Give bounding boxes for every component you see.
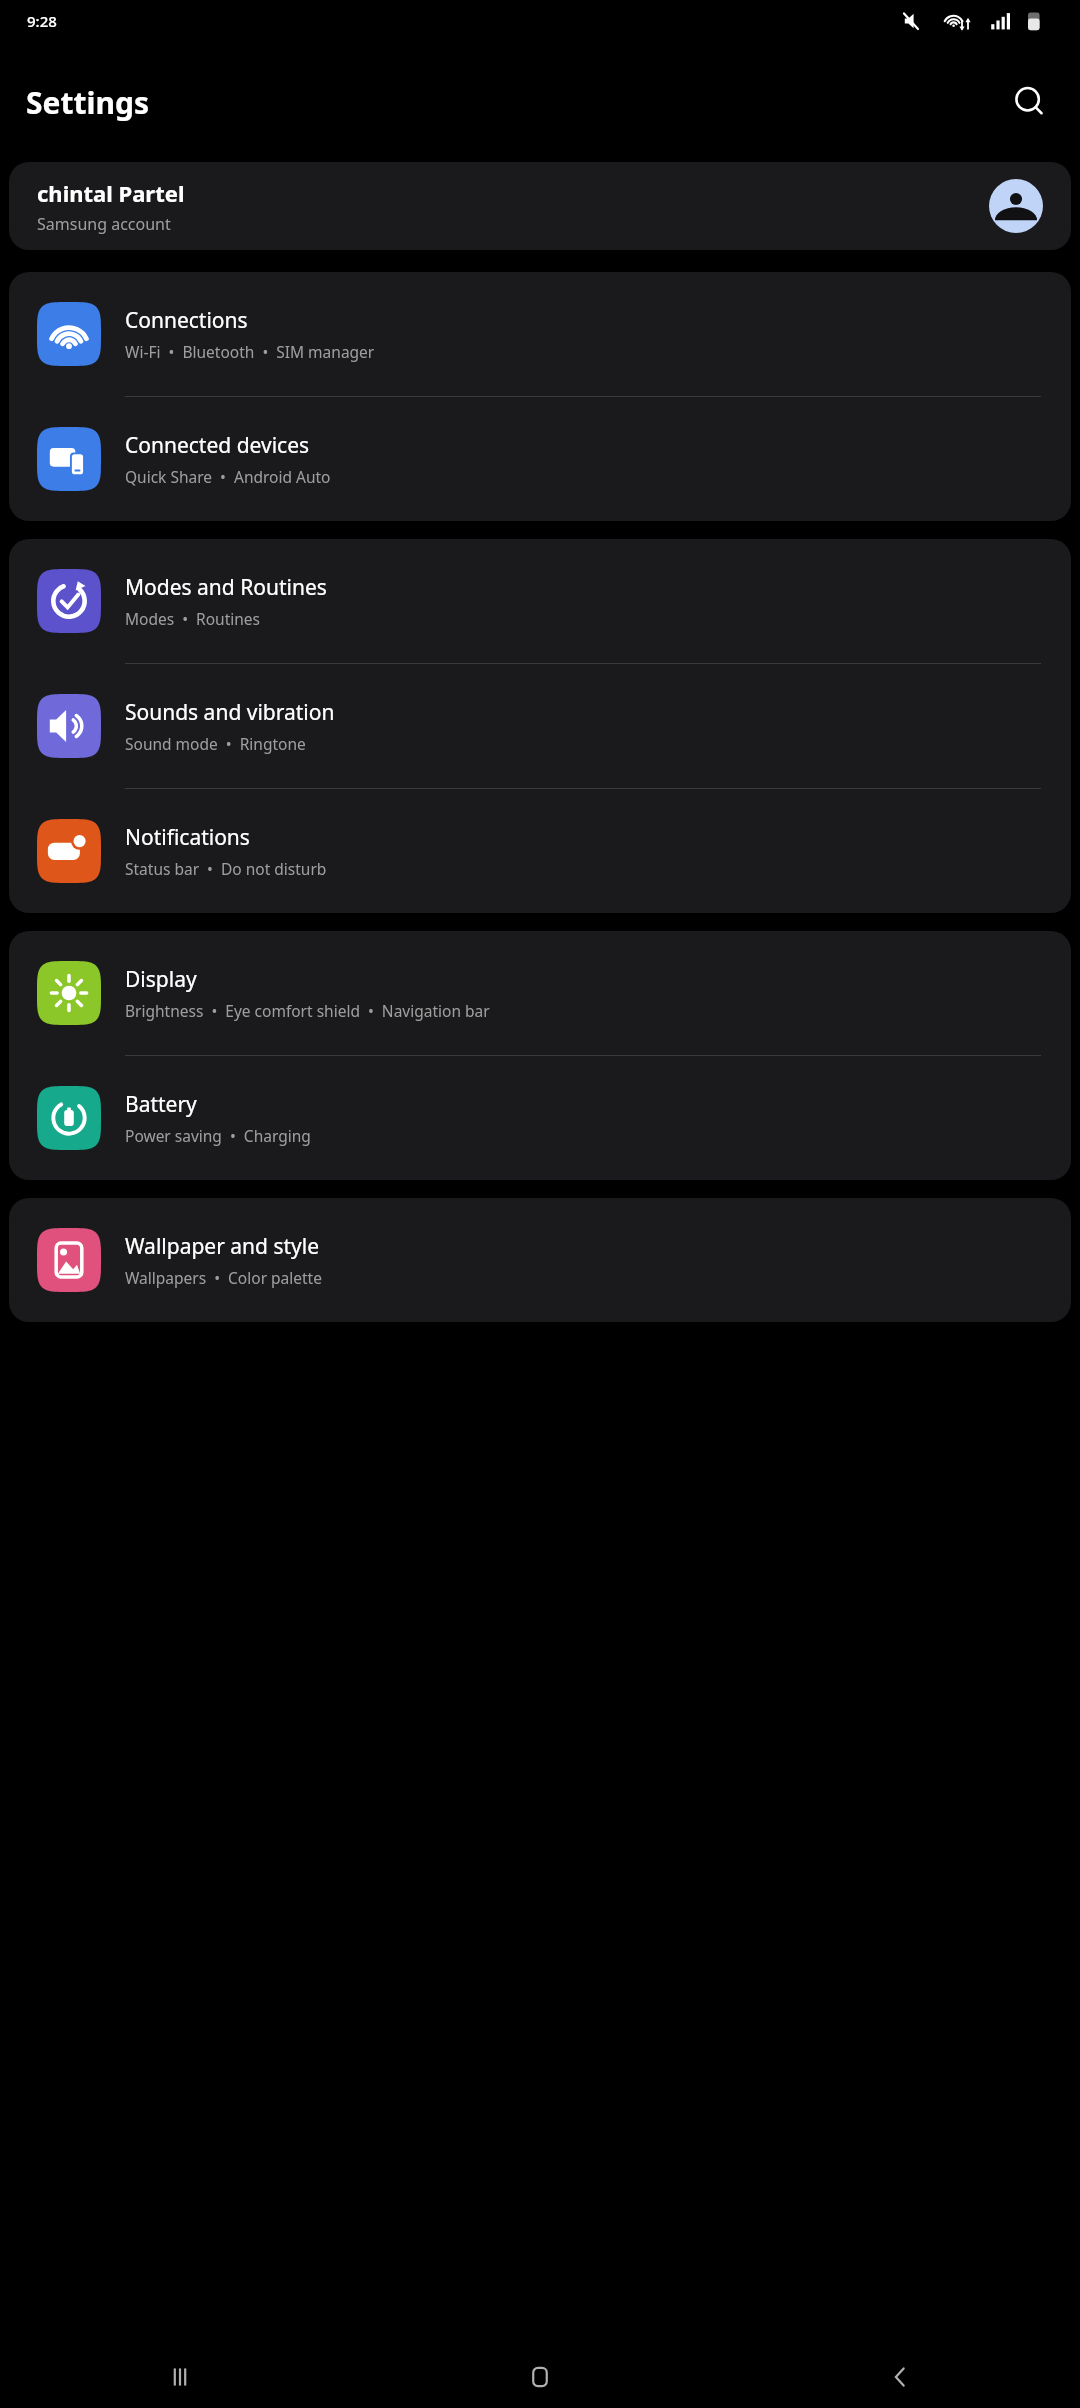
staticText: Modes • Routines [125, 608, 261, 629]
staticText: Settings [26, 82, 149, 123]
button[interactable]: Back [720, 2346, 1080, 2408]
staticText: Wallpapers • Color palette [125, 1267, 322, 1288]
staticText: Connected devices [125, 431, 310, 460]
staticText: Sounds and vibration [125, 698, 335, 727]
button[interactable]: Display [9, 931, 1071, 1055]
button[interactable]: Sounds and vibration [9, 664, 1071, 788]
staticText: Wallpaper and style [125, 1232, 320, 1261]
staticText: Wi-Fi • Bluetooth • SIM manager [125, 341, 375, 362]
staticText: Quick Share • Android Auto [125, 466, 331, 487]
button[interactable]: Connections [9, 272, 1071, 396]
button[interactable]: chintal Partel [9, 162, 1071, 250]
button[interactable]: Modes and Routines [9, 539, 1071, 663]
button[interactable]: Connected devices [9, 397, 1071, 521]
button[interactable]: Recents [0, 2346, 360, 2408]
staticText: Samsung account [37, 213, 171, 235]
staticText: Display [125, 965, 197, 994]
staticText: Status bar • Do not disturb [125, 858, 327, 879]
staticText: Connections [125, 306, 248, 335]
button[interactable]: Wallpaper and style [9, 1198, 1071, 1322]
button[interactable]: Battery [9, 1056, 1071, 1180]
staticText: Brightness • Eye comfort shield • Naviga… [125, 1000, 490, 1021]
staticText: Power saving • Charging [125, 1125, 311, 1146]
button[interactable]: Search [1002, 74, 1058, 130]
staticText: chintal Partel [37, 178, 185, 208]
button[interactable]: Home [360, 2346, 720, 2408]
staticText: Battery [125, 1090, 197, 1119]
staticText: Modes and Routines [125, 573, 327, 602]
staticText: 9:28 [27, 11, 57, 31]
button[interactable]: Notifications [9, 789, 1071, 913]
staticText: Sound mode • Ringtone [125, 733, 306, 754]
staticText: Notifications [125, 823, 250, 852]
